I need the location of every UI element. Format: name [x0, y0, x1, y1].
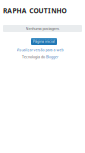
button[interactable]: Tecnologia do: [0, 54, 80, 60]
button[interactable]: Página inicial: [31, 38, 57, 45]
staticText: Blogger: [46, 55, 58, 59]
staticText: Página inicial: [33, 39, 55, 44]
button[interactable]: Visualizar versão para a web: [0, 47, 80, 53]
staticText: Tecnologia do: [22, 55, 46, 59]
staticText: Visualizar versão para a web: [16, 48, 63, 52]
staticText: Nenhuma postagem.: [25, 26, 59, 31]
staticText: RAPHA COUTINHO: [3, 6, 67, 15]
